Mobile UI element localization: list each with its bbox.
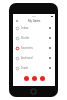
button[interactable]: Action 3 [40,76,45,81]
staticText: Inbox [21,26,29,30]
staticText: 9:41 [32,15,37,18]
button[interactable]: Favorites [13,43,55,53]
button[interactable]: Action 2 [32,76,37,81]
button[interactable]: Home [30,88,37,95]
staticText: Drafts [21,36,30,40]
button[interactable]: Trash [13,63,55,73]
staticText: Favorites [21,46,33,50]
staticText: Trash [21,66,29,70]
staticText: Archived [21,56,33,60]
button[interactable]: Drafts [13,33,55,43]
button[interactable]: Archived [13,53,55,63]
staticText: My Items [28,19,41,23]
button[interactable]: Action 1 [24,76,29,81]
button[interactable]: Inbox [13,23,55,33]
